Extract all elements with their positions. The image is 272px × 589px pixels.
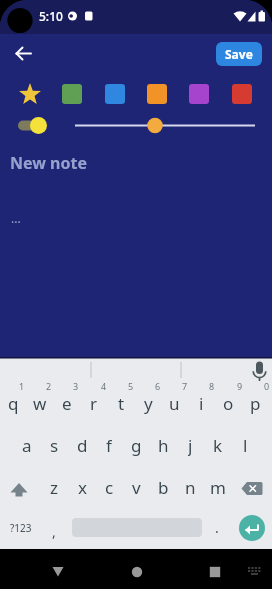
staticText: k [213,434,223,456]
button[interactable] [70,113,260,138]
button[interactable]: y [135,392,161,414]
staticText: d [77,434,88,456]
button[interactable]: ... [8,208,24,228]
button[interactable]: t [108,392,134,414]
button[interactable] [242,560,266,584]
staticText: , [52,522,56,541]
button[interactable]: . [208,516,226,538]
button[interactable] [14,113,52,138]
staticText: t [118,392,125,414]
staticText: i [199,392,204,414]
button[interactable] [19,83,41,105]
staticText: 8 [209,380,215,392]
button[interactable]: l [232,434,258,456]
button[interactable] [123,557,151,585]
button[interactable]: i [188,392,214,414]
button[interactable]: a [14,434,40,456]
button[interactable]: m [205,476,231,498]
staticText: b [158,476,169,498]
button[interactable]: g [123,434,149,456]
button[interactable]: r [81,392,107,414]
button[interactable]: p [242,392,268,414]
button[interactable]: n [177,476,203,498]
button[interactable] [189,84,209,104]
staticText: c [105,476,114,498]
staticText: 9 [237,380,243,392]
staticText: 6 [155,380,161,392]
staticText: . [215,518,219,537]
button[interactable]: w [27,392,53,414]
button[interactable]: d [69,434,95,456]
staticText: 7 [182,380,188,392]
staticText: Save [225,46,253,62]
staticText: y [144,392,153,414]
staticText: e [62,392,72,414]
button[interactable] [237,475,269,501]
staticText: s [50,434,59,456]
button[interactable] [4,473,38,501]
button[interactable]: o [215,392,241,414]
button[interactable]: q [0,392,26,414]
staticText: New note [10,152,87,174]
button[interactable]: j [177,434,203,456]
staticText: 4 [101,380,107,392]
button[interactable]: k [205,434,231,456]
staticText: ... [11,210,21,226]
staticText: a [22,434,32,456]
staticText: 0 [264,380,270,392]
button[interactable] [239,515,265,541]
button[interactable]: v [123,476,149,498]
staticText: 5:10 [39,8,63,24]
button[interactable]: New note [9,151,87,175]
button[interactable] [62,84,82,104]
staticText: f [106,434,112,456]
button[interactable]: e [54,392,80,414]
staticText: 1 [19,380,25,392]
staticText: n [185,476,196,498]
staticText: g [131,434,142,456]
button[interactable] [10,40,38,68]
button[interactable]: c [96,476,122,498]
button[interactable]: , [45,520,63,542]
button[interactable]: ?123 [6,518,36,538]
staticText: 5 [128,380,134,392]
staticText: 3 [73,380,79,392]
staticText: v [132,476,141,498]
button[interactable]: u [161,392,187,414]
staticText: w [33,392,47,414]
button[interactable]: h [150,434,176,456]
staticText: ?123 [10,521,32,535]
button[interactable]: z [41,476,67,498]
staticText: m [210,476,226,498]
staticText: x [78,476,87,498]
staticText: l [243,434,248,456]
button[interactable]: b [150,476,176,498]
staticText: z [50,476,58,498]
staticText: j [188,434,193,456]
button[interactable] [147,84,167,104]
staticText: u [169,392,180,414]
button[interactable] [201,557,229,585]
staticText: h [158,434,169,456]
button[interactable] [105,84,125,104]
button[interactable]: Save [216,42,262,66]
button[interactable]: x [69,476,95,498]
staticText: r [90,392,98,414]
button[interactable] [232,84,252,104]
staticText: p [250,392,261,414]
button[interactable] [44,557,72,585]
button[interactable]: s [41,434,67,456]
staticText: q [8,392,19,414]
staticText: o [223,392,234,414]
button[interactable]: f [96,434,122,456]
staticText: 2 [46,380,52,392]
